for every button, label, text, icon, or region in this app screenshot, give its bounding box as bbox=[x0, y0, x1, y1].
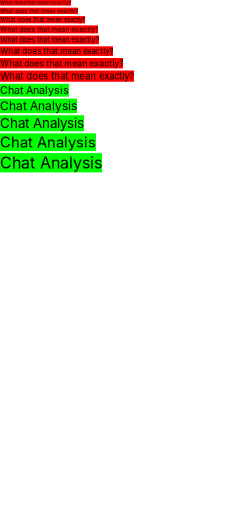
staticText: Chat Analysis bbox=[0, 99, 77, 113]
staticText: What does that mean exactly? bbox=[0, 35, 99, 44]
staticText: What does that mean exactly? bbox=[0, 0, 71, 6]
staticText: What does that mean exactly? bbox=[0, 25, 98, 33]
staticText: What does that mean exactly? bbox=[0, 16, 85, 23]
staticText: What does that mean exactly? bbox=[0, 58, 123, 68]
staticText: Chat Analysis bbox=[0, 133, 96, 151]
staticText: What does that mean exactly? bbox=[0, 8, 78, 14]
staticText: Chat Analysis bbox=[0, 115, 84, 131]
staticText: What does that mean exactly? bbox=[0, 46, 113, 56]
staticText: What does that mean exactly? bbox=[0, 70, 134, 82]
staticText: Chat Analysis bbox=[0, 84, 69, 97]
staticText: Chat Analysis bbox=[0, 153, 102, 172]
